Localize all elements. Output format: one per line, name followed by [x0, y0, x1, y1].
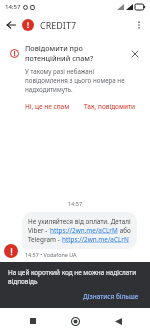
button[interactable]: More options: [128, 14, 150, 36]
staticText: На цей короткий код не можна надіслати в…: [8, 268, 142, 286]
button[interactable]: Home: [65, 311, 85, 331]
staticText: https://2wn.me/aCLrN: [62, 235, 129, 244]
staticText: Ні, це не спам: [25, 102, 70, 111]
button[interactable]: Contact avatar: [4, 244, 18, 258]
button[interactable]: Ні, це не спам: [21, 100, 74, 113]
staticText: CREDIT7: [40, 19, 77, 31]
staticText: https://2wn.me/aCLrM: [50, 226, 118, 235]
staticText: Не ухиляйтеся від оплати. Деталі: [28, 217, 131, 226]
staticText: Дізнатися більше: [83, 292, 139, 301]
staticText: 14:57: [5, 3, 21, 11]
staticText: Так, повідомити: [84, 102, 136, 111]
staticText: Повідомити про потенційний спам?: [25, 43, 129, 63]
staticText: Telegram -: [28, 235, 62, 244]
button[interactable]: Так, повідомити: [80, 100, 140, 113]
button[interactable]: Back: [0, 14, 22, 36]
button[interactable]: Recents: [23, 311, 43, 331]
button[interactable]: CREDIT7: [22, 14, 128, 36]
staticText: або: [118, 226, 131, 235]
staticText: 14:57 • Vodafone UA: [25, 251, 77, 258]
staticText: У такому разі небажані повідомлення з ць…: [25, 67, 130, 94]
button[interactable]: Дізнатися більше: [80, 291, 142, 302]
button[interactable]: Не ухиляйтеся від оплати. Деталі: [22, 212, 137, 249]
staticText: Viber -: [28, 226, 50, 235]
button[interactable]: Back: [108, 311, 128, 331]
button[interactable]: Close: [129, 48, 140, 59]
staticText: 14:57: [0, 200, 150, 208]
